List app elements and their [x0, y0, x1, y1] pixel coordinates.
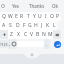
- button[interactable]: Enter: [50, 39, 64, 49]
- staticText: E: [15, 13, 18, 20]
- button[interactable]: Keyboard settings: [1, 4, 5, 8]
- staticText: I: [45, 13, 47, 20]
- button[interactable]: Y: [31, 12, 37, 21]
- staticText: Yes: [12, 3, 20, 9]
- button[interactable]: Comma: [8, 39, 11, 49]
- button[interactable]: Period: [44, 39, 50, 49]
- staticText: P: [56, 13, 60, 20]
- staticText: Z: [10, 31, 13, 38]
- staticText: D: [16, 22, 20, 29]
- button[interactable]: X: [15, 30, 22, 39]
- button[interactable]: Backspace: [53, 30, 61, 39]
- staticText: L: [53, 22, 56, 29]
- staticText: K: [46, 22, 50, 29]
- staticText: X: [17, 31, 20, 38]
- button[interactable]: U: [37, 12, 43, 21]
- button[interactable]: R: [19, 12, 25, 21]
- staticText: Thanks: [29, 3, 45, 9]
- staticText: .: [46, 41, 48, 48]
- staticText: G: [28, 22, 32, 29]
- button[interactable]: K: [45, 21, 51, 30]
- button[interactable]: Emoji: [11, 39, 17, 49]
- button[interactable]: E: [13, 12, 19, 21]
- button[interactable]: F: [21, 21, 27, 30]
- button[interactable]: Shift: [0, 30, 8, 39]
- staticText: Y: [33, 13, 36, 20]
- button[interactable]: W: [7, 12, 13, 21]
- staticText: N: [42, 31, 46, 38]
- button[interactable]: Ok: [47, 0, 62, 12]
- button[interactable]: Q: [0, 12, 7, 21]
- button[interactable]: C: [22, 30, 29, 39]
- button[interactable]: G: [27, 21, 33, 30]
- button[interactable]: ?123: [0, 40, 8, 48]
- button[interactable]: T: [25, 12, 31, 21]
- button[interactable]: I: [43, 12, 49, 21]
- staticText: Ok: [52, 3, 58, 9]
- button[interactable]: J: [39, 21, 45, 30]
- staticText: ,: [9, 41, 11, 48]
- button[interactable]: L: [51, 21, 57, 30]
- staticText: V: [30, 31, 34, 38]
- button[interactable]: N: [41, 30, 47, 39]
- staticText: W: [8, 13, 13, 20]
- button[interactable]: S: [7, 21, 14, 30]
- staticText: F: [23, 22, 26, 29]
- staticText: T: [27, 13, 30, 20]
- staticText: H: [34, 22, 38, 29]
- button[interactable]: B: [35, 30, 41, 39]
- button[interactable]: H: [33, 21, 39, 30]
- staticText: M: [48, 31, 53, 38]
- staticText: ?123: [0, 42, 8, 47]
- button[interactable]: Z: [8, 30, 15, 39]
- button[interactable]: O: [49, 12, 55, 21]
- button[interactable]: A: [0, 21, 7, 30]
- staticText: S: [9, 22, 12, 29]
- button[interactable]: D: [14, 21, 21, 30]
- button[interactable]: V: [29, 30, 35, 39]
- staticText: R: [20, 13, 24, 20]
- button[interactable]: P: [55, 12, 61, 21]
- staticText: C: [24, 31, 28, 38]
- staticText: J: [41, 22, 43, 29]
- staticText: U: [38, 13, 42, 20]
- staticText: A: [2, 22, 6, 29]
- staticText: B: [36, 31, 40, 38]
- staticText: Q: [2, 13, 6, 20]
- button[interactable]: Thanks: [26, 0, 47, 12]
- button[interactable]: Yes: [6, 0, 26, 12]
- button[interactable]: M: [47, 30, 53, 39]
- staticText: O: [50, 13, 54, 20]
